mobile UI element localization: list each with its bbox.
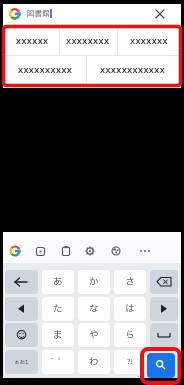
button[interactable] bbox=[36, 247, 45, 256]
staticText: ?! bbox=[127, 357, 133, 367]
staticText: た bbox=[53, 302, 63, 316]
staticText: か bbox=[89, 275, 99, 289]
button[interactable]: ?! bbox=[114, 350, 146, 374]
button[interactable] bbox=[139, 249, 151, 253]
button[interactable] bbox=[111, 246, 121, 256]
button[interactable] bbox=[3, 4, 181, 25]
staticText: 図書館 bbox=[27, 8, 50, 19]
button[interactable]: さ bbox=[114, 270, 146, 294]
button[interactable]: あ bbox=[42, 270, 74, 294]
button[interactable] bbox=[150, 297, 178, 321]
button[interactable]: ま bbox=[42, 323, 74, 347]
staticText: XXXXXXXXXX bbox=[18, 65, 73, 75]
button[interactable]: ゛゜ bbox=[42, 350, 74, 374]
button[interactable] bbox=[9, 8, 21, 20]
button[interactable]: XXXXXXXX bbox=[48, 35, 128, 47]
staticText: は bbox=[125, 302, 135, 316]
staticText: わ bbox=[89, 355, 99, 369]
button[interactable] bbox=[85, 246, 95, 256]
button[interactable] bbox=[9, 245, 21, 257]
staticText: XXXXXX bbox=[16, 36, 49, 46]
button[interactable] bbox=[150, 323, 178, 347]
staticText: XXXXXXXXXXXX bbox=[100, 65, 166, 75]
button[interactable] bbox=[5, 297, 38, 321]
staticText: ぁあ1 bbox=[14, 358, 29, 366]
staticText: さ bbox=[125, 275, 135, 289]
staticText: ゛゜ bbox=[51, 357, 65, 367]
button[interactable]: わ bbox=[78, 350, 110, 374]
button[interactable]: は bbox=[114, 297, 146, 321]
button[interactable] bbox=[5, 270, 38, 294]
staticText: や bbox=[89, 328, 99, 342]
staticText: あ bbox=[53, 275, 63, 289]
button[interactable]: か bbox=[78, 270, 110, 294]
button[interactable] bbox=[62, 246, 70, 256]
button[interactable]: XXXXXXXXXX bbox=[5, 64, 85, 76]
button[interactable] bbox=[147, 353, 175, 378]
button[interactable]: ら bbox=[114, 323, 146, 347]
button[interactable]: な bbox=[78, 297, 110, 321]
button[interactable]: XXXXXXX bbox=[109, 35, 184, 47]
staticText: ら bbox=[125, 328, 135, 342]
button[interactable]: ぁあ1 bbox=[5, 350, 38, 374]
button[interactable] bbox=[155, 9, 165, 19]
button[interactable] bbox=[5, 323, 38, 347]
button[interactable]: XXXXXX bbox=[0, 35, 72, 47]
staticText: XXXXXXXX bbox=[66, 36, 110, 46]
staticText: な bbox=[89, 302, 99, 316]
button[interactable]: や bbox=[78, 323, 110, 347]
button[interactable]: た bbox=[42, 297, 74, 321]
button[interactable]: XXXXXXXXXXXX bbox=[93, 64, 173, 76]
staticText: XXXXXXX bbox=[130, 36, 168, 46]
button[interactable] bbox=[150, 270, 178, 294]
staticText: ま bbox=[53, 328, 63, 342]
